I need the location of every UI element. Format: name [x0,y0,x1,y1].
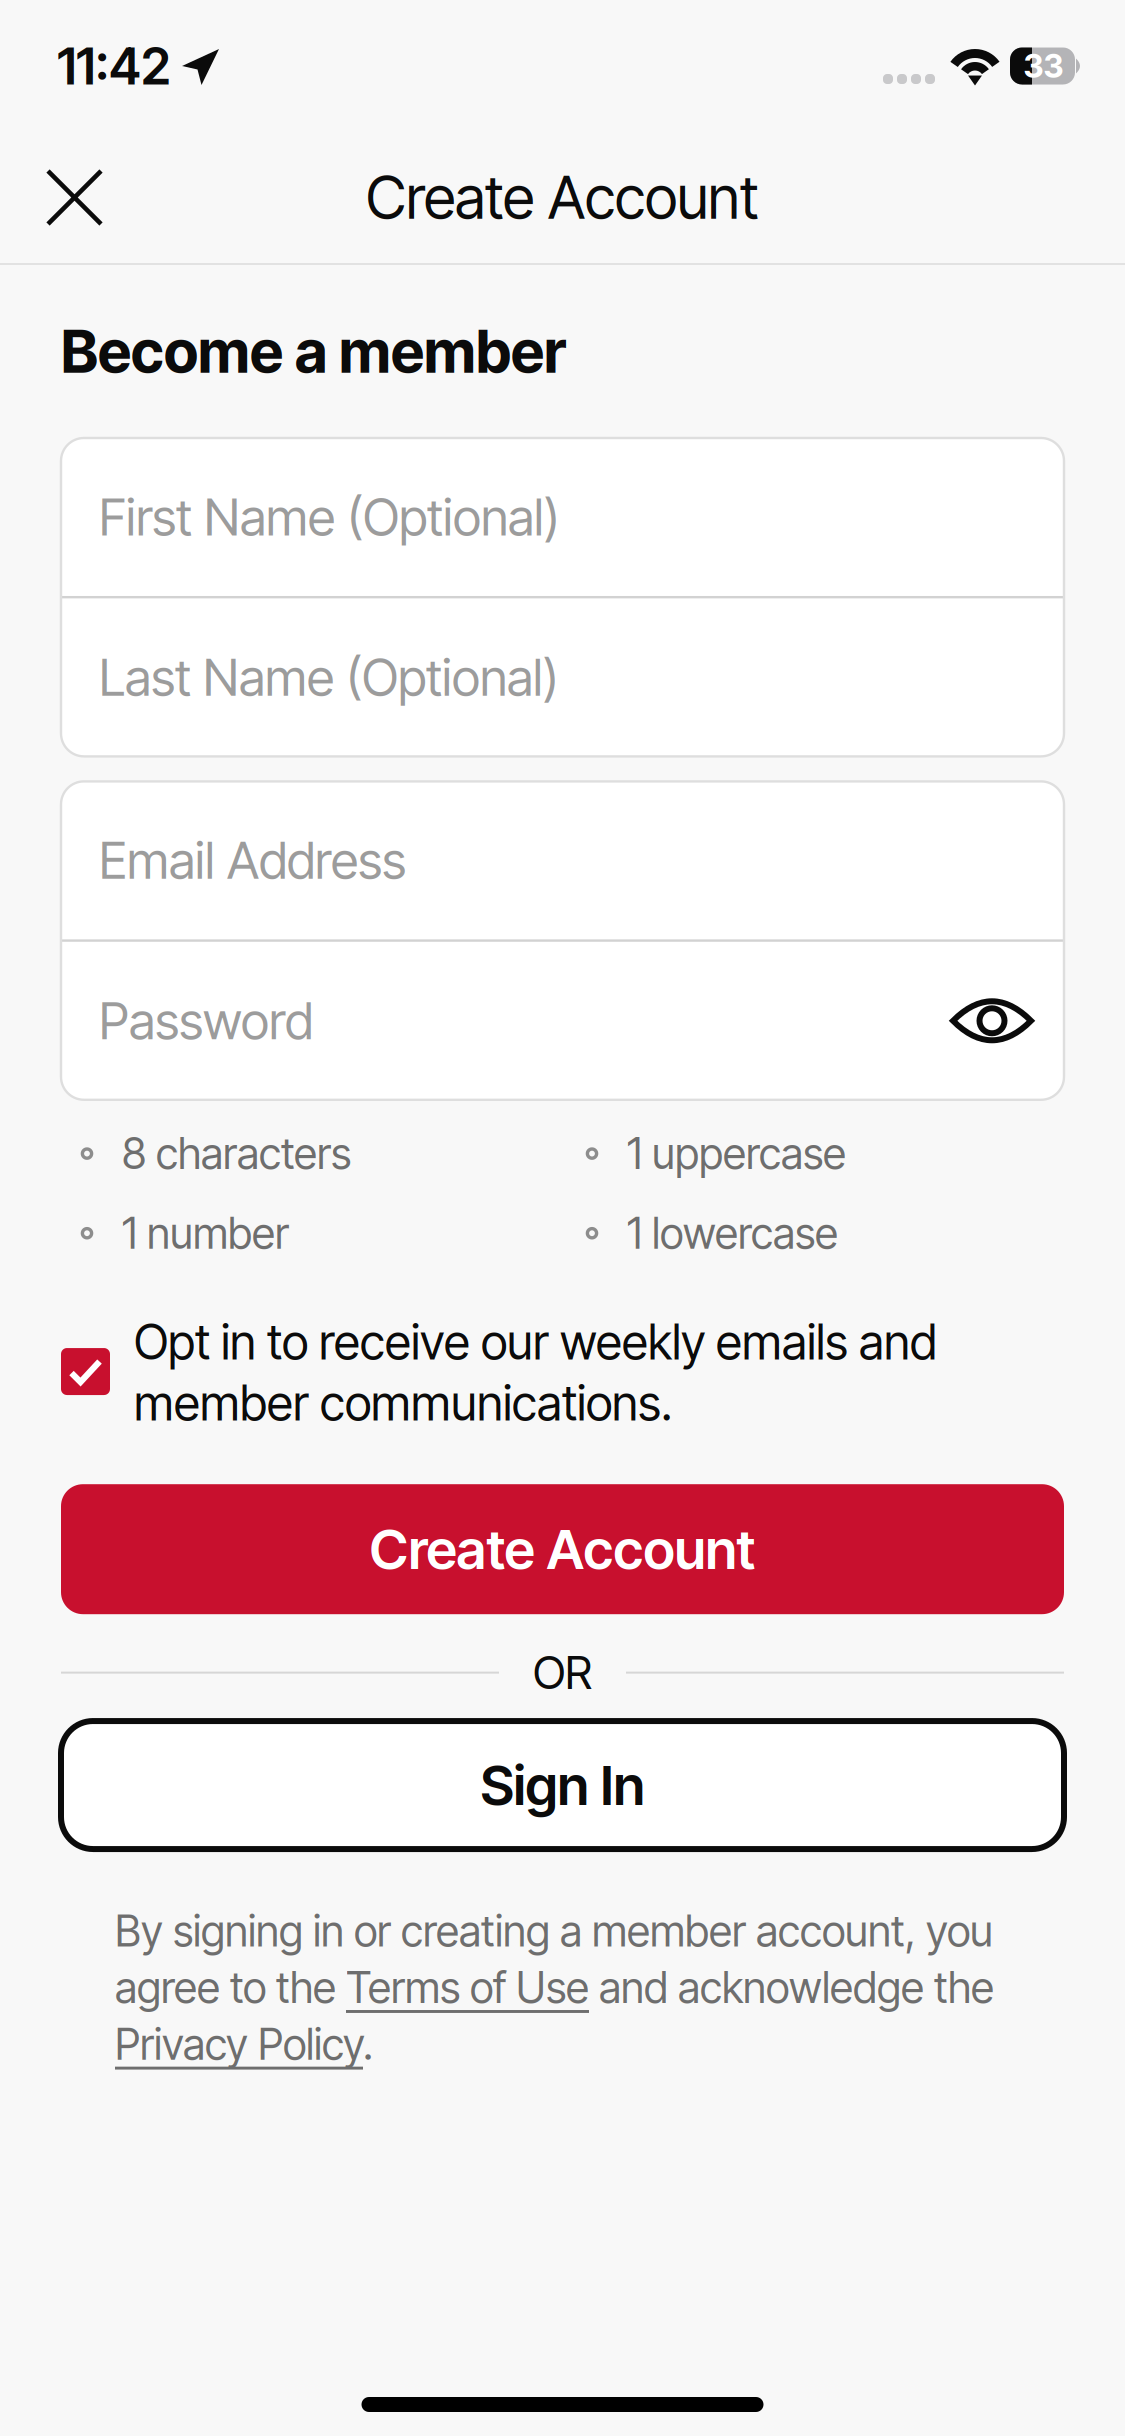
staticText: 33 [1023,47,1063,85]
staticText: Sign In [480,1752,644,1818]
staticText: First Name (Optional) [99,486,560,548]
staticText: Create Account [369,1516,755,1582]
staticText: Create Account [366,162,759,233]
staticText: Last Name (Optional) [99,647,559,708]
staticText: Email Address [99,830,406,891]
button[interactable]: Close [0,132,139,263]
button[interactable]: Password [61,942,1064,1100]
staticText: 1 lowercase [627,1207,838,1259]
staticText: 1 number [122,1207,289,1259]
button[interactable]: Email Address [61,781,1064,939]
staticText: 8 characters [122,1128,351,1179]
staticText: By signing in or creating a member accou… [115,1905,994,2070]
staticText: Opt in to receive our weekly emails and … [134,1313,937,1432]
staticText: Password [99,990,313,1051]
button[interactable]: First Name (Optional) [61,438,1064,596]
button[interactable]: Sign In [61,1721,1064,1849]
button[interactable]: Create Account [61,1484,1064,1614]
staticText: Become a member [61,316,566,387]
staticText: 11:42 [57,35,171,97]
button[interactable]: Last Name (Optional) [61,598,1064,756]
staticText: 1 uppercase [627,1128,846,1179]
staticText: OR [533,1645,592,1700]
button[interactable]: Opt in to receive our weekly emails and … [61,1313,1064,1432]
